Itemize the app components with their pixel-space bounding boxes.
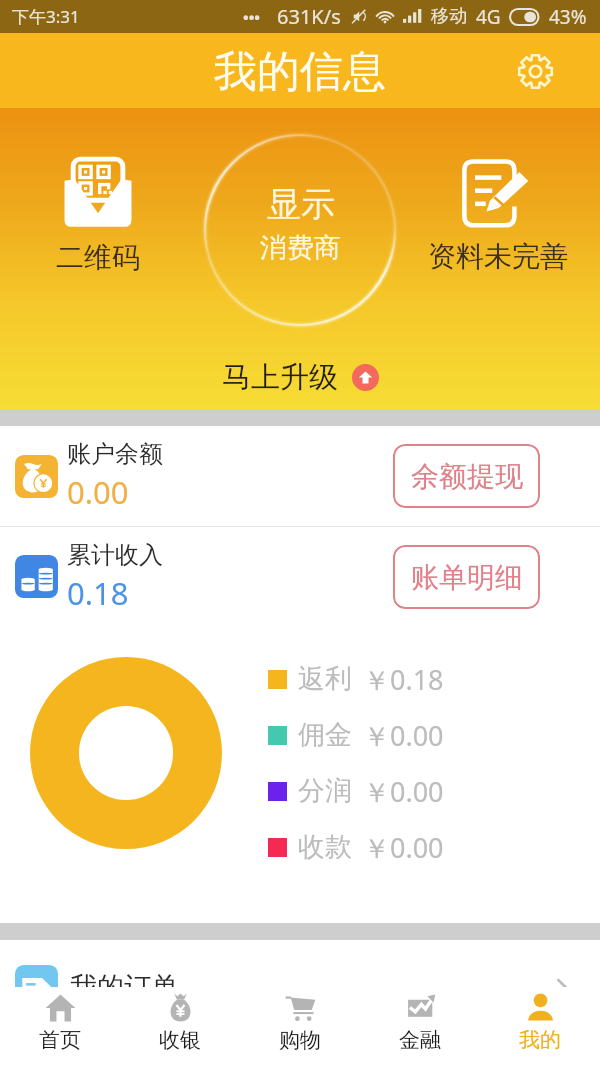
staticText: 消费商 — [260, 231, 341, 265]
button[interactable]: 我的 — [480, 987, 600, 1067]
staticText: 二维码 — [56, 240, 140, 275]
button[interactable]: 二维码 — [56, 157, 140, 275]
staticText: ••• — [243, 7, 260, 27]
button[interactable]: 显示 — [202, 132, 398, 328]
button[interactable]: 累计收入 — [0, 527, 600, 626]
staticText: 佣金 — [298, 718, 352, 752]
staticText: 0.00 — [67, 471, 129, 513]
staticText: 购物 — [279, 1027, 321, 1053]
button[interactable]: Settings — [513, 49, 557, 93]
staticText: 631K/s — [277, 3, 341, 30]
staticText: 4G — [476, 4, 501, 30]
button[interactable]: 金融 — [360, 987, 480, 1067]
button[interactable]: 资料未完善 — [428, 154, 568, 274]
staticText: 金融 — [399, 1027, 441, 1053]
staticText: 收款 — [298, 830, 352, 864]
staticText: ￥0.00 — [363, 773, 444, 810]
staticText: 资料未完善 — [428, 239, 568, 274]
button[interactable]: 我的订单 — [0, 940, 600, 1033]
button[interactable]: 账户余额 — [0, 426, 600, 526]
staticText: 我的 — [519, 1027, 561, 1053]
staticText: 首页 — [39, 1027, 81, 1053]
staticText: 返利 — [298, 662, 352, 696]
staticText: 收银 — [159, 1027, 201, 1053]
staticText: 账单明细 — [411, 560, 523, 595]
staticText: 账户余额 — [67, 439, 163, 469]
button[interactable]: 购物 — [240, 987, 360, 1067]
staticText: 移动 — [431, 5, 467, 28]
staticText: 0.18 — [67, 572, 129, 614]
staticText: 43% — [549, 4, 587, 30]
staticText: 余额提现 — [411, 459, 523, 494]
button[interactable]: 马上升级 — [222, 359, 379, 396]
staticText: 下午3:31 — [12, 5, 80, 28]
staticText: 分润 — [298, 774, 352, 808]
staticText: ￥0.18 — [363, 661, 444, 698]
button[interactable]: 收银 — [120, 987, 240, 1067]
staticText: 显示 — [267, 183, 335, 226]
staticText: 我的订单 — [70, 970, 178, 1004]
staticText: 马上升级 — [222, 359, 338, 396]
staticText: ￥0.00 — [363, 829, 444, 866]
staticText: ￥0.00 — [363, 717, 444, 754]
staticText: 我的信息 — [214, 45, 386, 99]
staticText: 累计收入 — [67, 540, 163, 570]
button[interactable]: 余额提现 — [393, 444, 540, 508]
button[interactable]: 首页 — [0, 987, 120, 1067]
button[interactable]: 账单明细 — [393, 545, 540, 609]
